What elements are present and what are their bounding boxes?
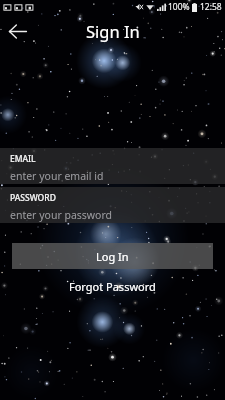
staticText: 100% — [168, 1, 190, 13]
button[interactable]: Back — [0, 14, 34, 48]
button[interactable]: Forgot Password — [0, 275, 225, 298]
staticText: PASSWORD — [10, 192, 56, 204]
staticText: enter your password — [10, 208, 113, 222]
staticText: Forgot Password — [69, 279, 156, 294]
button[interactable]: EMAIL — [0, 148, 225, 184]
button[interactable]: Log In — [12, 243, 213, 269]
staticText: Sign In — [86, 20, 140, 42]
staticText: 12:58 — [200, 1, 222, 13]
staticText: EMAIL — [10, 153, 36, 165]
staticText: enter your email id — [10, 169, 104, 183]
staticText: Log In — [96, 249, 129, 264]
button[interactable]: PASSWORD — [0, 187, 225, 223]
